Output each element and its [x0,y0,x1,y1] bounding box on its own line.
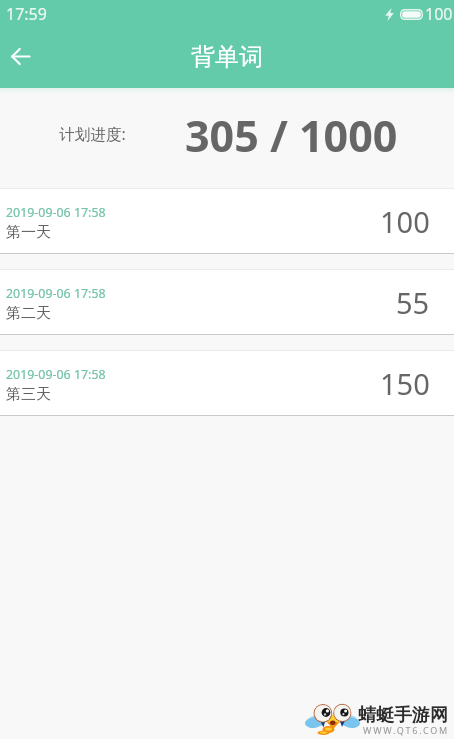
staticText: 2019-09-06 17:58 [6,366,106,383]
button[interactable]: 2019-09-06 17:58 [0,189,454,254]
staticText: 2019-09-06 17:58 [6,285,106,302]
staticText: WWW.QT6.COM [363,724,449,736]
staticText: 蜻蜓手游网 [358,704,448,727]
staticText: 150 [380,364,430,403]
staticText: 第一天 [6,223,51,242]
staticText: 55 [396,283,430,322]
staticText: 100 [425,3,453,25]
staticText: 2019-09-06 17:58 [6,204,106,221]
staticText: 第三天 [6,385,51,404]
staticText: 305 / 1000 [185,106,398,165]
staticText: 背单词 [191,42,263,72]
staticText: 17:59 [6,3,47,25]
staticText: 第二天 [6,304,51,323]
button[interactable]: 2019-09-06 17:58 [0,351,454,416]
button[interactable]: 2019-09-06 17:58 [0,270,454,335]
button[interactable]: Back [0,34,42,78]
staticText: 计划进度: [59,123,126,144]
staticText: 100 [380,202,430,241]
